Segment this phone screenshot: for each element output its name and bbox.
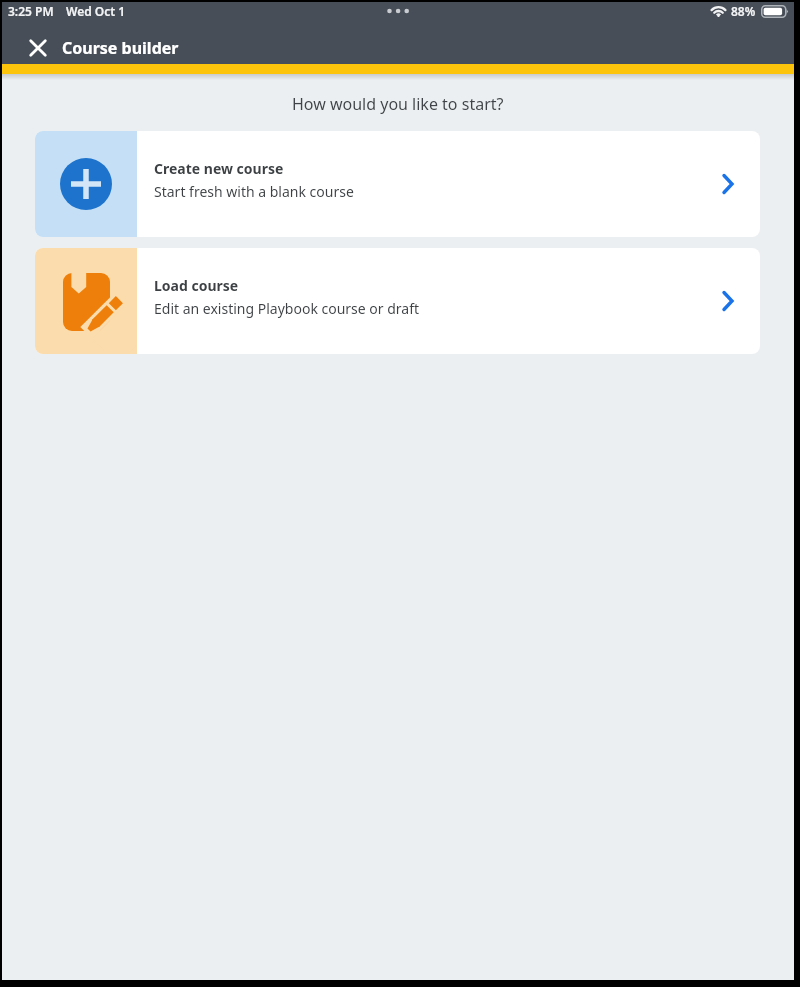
staticText: Course builder (62, 37, 179, 59)
button[interactable]: Load course (35, 248, 760, 354)
staticText: Start fresh with a blank course (154, 182, 354, 201)
staticText: Create new course (154, 159, 284, 178)
staticText: How would you like to start? (292, 93, 504, 115)
staticText: 3:25 PM (8, 3, 54, 19)
staticText: Load course (154, 276, 239, 295)
staticText: 88% (731, 3, 756, 19)
button[interactable] (30, 40, 46, 56)
staticText: Wed Oct 1 (66, 3, 126, 19)
button[interactable]: Create new course (35, 131, 760, 237)
staticText: Edit an existing Playbook course or draf… (154, 299, 420, 318)
